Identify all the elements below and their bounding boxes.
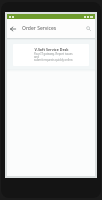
button[interactable]: V-Soft Service Desk (13, 44, 89, 66)
button[interactable]: Back (7, 19, 19, 38)
staticText: V-Soft Service Desk (34, 47, 69, 52)
button[interactable]: Search (82, 19, 95, 38)
staticText: Your IT gateway. Report issues and submi… (34, 52, 76, 62)
staticText: Order Services (22, 25, 57, 32)
